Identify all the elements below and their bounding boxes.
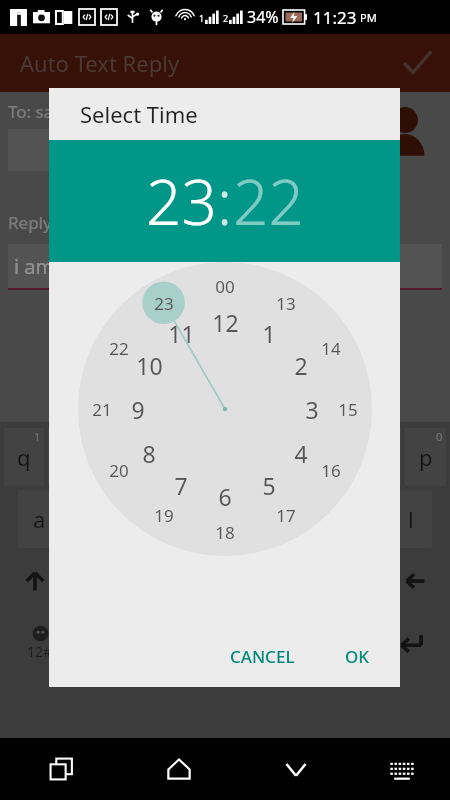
staticText: 12# — [27, 642, 53, 661]
button[interactable]: g — [206, 490, 248, 548]
staticText: 23 — [154, 292, 174, 315]
staticText: 13 — [276, 292, 296, 315]
staticText: 7 — [174, 470, 188, 501]
staticText: a — [33, 504, 46, 534]
staticText: 19 — [154, 504, 174, 527]
button[interactable]: d — [112, 490, 155, 548]
button[interactable]: 7 — [270, 428, 311, 486]
staticText: 1 — [34, 429, 41, 444]
staticText: h — [266, 504, 280, 534]
button[interactable]: 8 — [315, 428, 356, 486]
button[interactable]: l — [390, 490, 432, 548]
button[interactable]: . — [330, 614, 372, 672]
staticText: e — [106, 442, 119, 472]
staticText: 14 — [321, 337, 341, 360]
staticText: d — [127, 504, 141, 534]
staticText: 11 — [168, 318, 195, 349]
button[interactable]: Clock face — [78, 262, 372, 556]
staticText: 1 — [199, 12, 205, 24]
staticText: 0: — [60, 137, 76, 163]
staticText: 10 — [136, 350, 163, 381]
staticText: 34% — [247, 6, 279, 28]
staticText: 1 — [262, 318, 276, 349]
button[interactable]: 22 — [233, 159, 304, 243]
staticText: 6 — [218, 481, 232, 512]
staticText: p — [419, 442, 433, 472]
button[interactable]: Recent apps — [38, 745, 86, 793]
button[interactable]: Back — [272, 745, 320, 793]
staticText: 18 — [215, 521, 235, 544]
button[interactable]: 4 — [136, 428, 176, 486]
button[interactable]: Symbols — [4, 614, 75, 672]
button[interactable]: Backspace — [383, 552, 446, 610]
staticText: i — [333, 442, 339, 472]
button[interactable]: 0: — [8, 129, 128, 171]
button[interactable]: Space — [126, 614, 326, 672]
staticText: u — [284, 442, 298, 472]
staticText: l — [408, 504, 414, 534]
button[interactable]: h — [252, 490, 294, 548]
button[interactable]: Enter — [376, 614, 446, 672]
button[interactable]: Home — [155, 745, 203, 793]
button[interactable]: Shift — [4, 552, 66, 610]
button[interactable]: a — [18, 490, 61, 548]
staticText: i am — [14, 253, 55, 280]
staticText: . — [348, 630, 354, 657]
button[interactable]: 6 — [225, 428, 266, 486]
staticText: 00 — [215, 275, 235, 298]
staticText: 21 — [92, 398, 112, 421]
button[interactable]: 5 — [180, 428, 221, 486]
staticText: 22 — [109, 337, 129, 360]
staticText: PM — [360, 10, 377, 25]
staticText: To: sa — [8, 100, 54, 123]
button[interactable]: 3 — [92, 428, 132, 486]
staticText: q — [17, 442, 31, 472]
button[interactable]: 23 — [146, 159, 217, 243]
button[interactable]: Save — [400, 46, 434, 80]
button[interactable]: 2 — [48, 428, 88, 486]
button[interactable]: CANCEL — [218, 637, 307, 676]
staticText: 0 — [436, 429, 443, 444]
button[interactable]: f — [159, 490, 202, 548]
staticText: OK — [345, 645, 370, 668]
staticText: 8 — [142, 438, 156, 469]
button[interactable]: j — [298, 490, 340, 548]
button[interactable]: Switch keyboard — [378, 745, 426, 793]
staticText: 5 — [262, 470, 276, 501]
staticText: 2 — [78, 429, 85, 444]
button[interactable]: 0 — [405, 428, 446, 486]
staticText: 16 — [321, 459, 341, 482]
staticText: 9 — [131, 394, 145, 425]
button[interactable]: 1 — [4, 428, 44, 486]
button[interactable]: OK — [333, 637, 382, 676]
button[interactable]: 9 — [360, 428, 401, 486]
staticText: Auto Text Reply — [20, 48, 180, 78]
staticText: 11:23 — [313, 6, 357, 29]
